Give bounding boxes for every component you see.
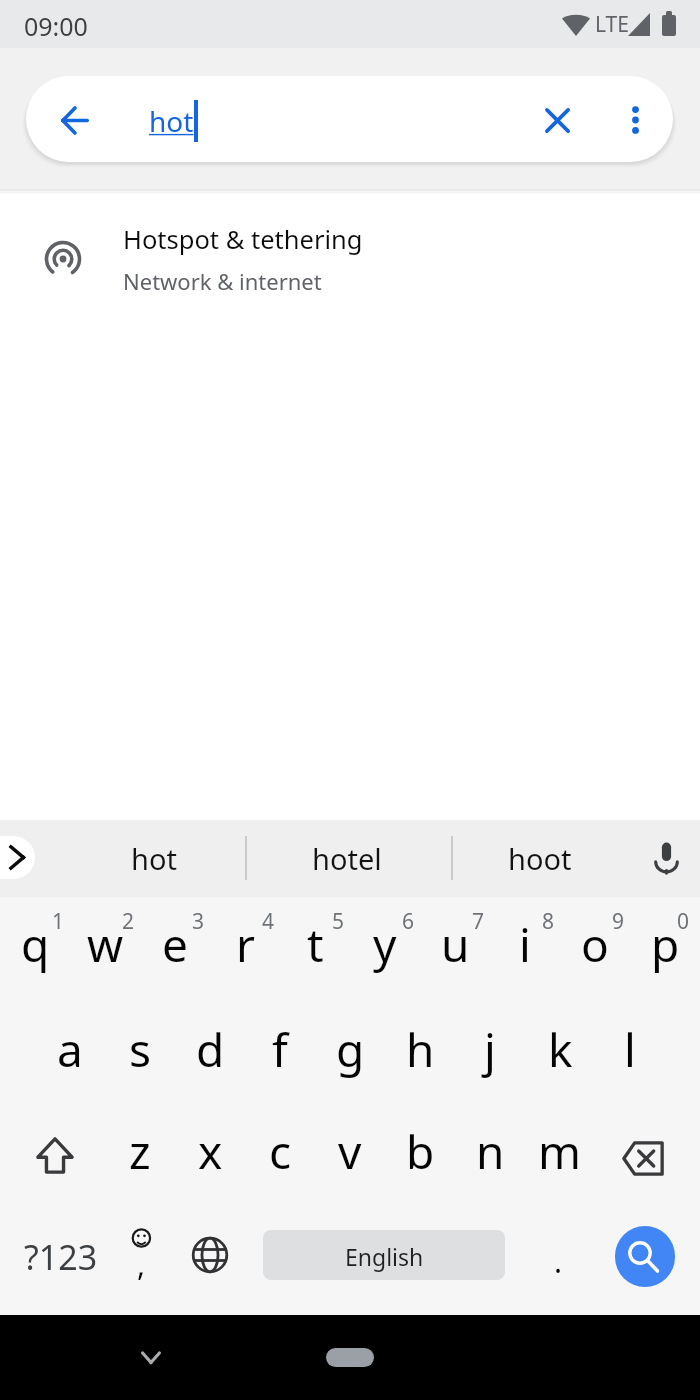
- button[interactable]: n: [455, 1106, 525, 1211]
- staticText: hotel: [312, 839, 382, 878]
- button[interactable]: Change keyboard language: [175, 1202, 245, 1307]
- staticText: x: [198, 1120, 223, 1183]
- staticText: y: [373, 913, 397, 976]
- button[interactable]: s: [105, 1002, 175, 1107]
- staticText: 3: [192, 907, 205, 936]
- button[interactable]: Hotspot & tethering: [0, 211, 700, 307]
- staticText: i: [519, 913, 531, 976]
- button[interactable]: m: [525, 1106, 595, 1211]
- staticText: v: [338, 1120, 362, 1183]
- button[interactable]: h: [385, 1002, 455, 1107]
- button[interactable]: b: [385, 1106, 455, 1211]
- button[interactable]: 7: [420, 897, 490, 1002]
- staticText: .: [554, 1241, 563, 1282]
- staticText: hot: [131, 839, 177, 878]
- staticText: g: [336, 1018, 365, 1081]
- staticText: k: [548, 1018, 573, 1081]
- button[interactable]: hot: [64, 820, 244, 897]
- staticText: 1: [52, 907, 65, 936]
- staticText: c: [269, 1120, 292, 1183]
- staticText: p: [651, 913, 680, 976]
- staticText: q: [21, 913, 50, 976]
- button[interactable]: hotel: [257, 820, 437, 897]
- staticText: b: [406, 1120, 435, 1183]
- staticText: 4: [262, 907, 275, 936]
- button[interactable]: Shift: [20, 1103, 90, 1208]
- staticText: ,: [137, 1244, 146, 1285]
- button[interactable]: 1: [0, 897, 70, 1002]
- button[interactable]: v: [315, 1106, 385, 1211]
- staticText: l: [624, 1018, 636, 1081]
- button[interactable]: Home: [326, 1348, 374, 1367]
- staticText: 9: [612, 907, 625, 936]
- button[interactable]: Voice input: [636, 826, 697, 891]
- staticText: LTE: [595, 10, 629, 39]
- button[interactable]: x: [175, 1106, 245, 1211]
- staticText: ?123: [24, 1234, 98, 1280]
- button[interactable]: Show more suggestions: [0, 836, 35, 879]
- button[interactable]: More options: [602, 77, 668, 162]
- staticText: t: [307, 913, 324, 976]
- staticText: f: [272, 1018, 288, 1081]
- staticText: r: [236, 913, 255, 976]
- button[interactable]: Navigate up: [26, 76, 673, 162]
- button[interactable]: 6: [350, 897, 420, 1002]
- button[interactable]: z: [105, 1106, 175, 1211]
- staticText: hot: [149, 102, 194, 140]
- staticText: o: [581, 913, 609, 976]
- staticText: j: [484, 1018, 496, 1081]
- button[interactable]: .: [528, 1211, 588, 1316]
- staticText: 2: [122, 907, 135, 936]
- staticText: m: [538, 1120, 582, 1183]
- staticText: e: [162, 913, 188, 976]
- button[interactable]: hoot: [450, 820, 630, 897]
- staticText: 5: [332, 907, 345, 936]
- button[interactable]: ?123: [12, 1211, 96, 1316]
- staticText: d: [196, 1018, 225, 1081]
- staticText: 7: [472, 907, 485, 936]
- button[interactable]: 0: [630, 897, 700, 1002]
- staticText: 8: [542, 907, 555, 936]
- staticText: hoot: [508, 839, 572, 878]
- staticText: s: [129, 1018, 152, 1081]
- button[interactable]: Clear query: [524, 77, 590, 162]
- staticText: Hotspot & tethering: [123, 222, 363, 257]
- staticText: h: [406, 1018, 435, 1081]
- button[interactable]: 2: [70, 897, 140, 1002]
- staticText: w: [87, 913, 124, 976]
- button[interactable]: Hide keyboard: [121, 1328, 181, 1388]
- button[interactable]: English: [263, 1230, 505, 1280]
- staticText: 0: [677, 907, 690, 936]
- staticText: n: [476, 1120, 505, 1183]
- staticText: a: [57, 1018, 83, 1081]
- button[interactable]: 8: [490, 897, 560, 1002]
- staticText: English: [345, 1241, 424, 1272]
- button[interactable]: Backspace: [608, 1106, 678, 1211]
- button[interactable]: 3: [140, 897, 210, 1002]
- button[interactable]: a: [35, 1002, 105, 1107]
- button[interactable]: 5: [280, 897, 350, 1002]
- staticText: u: [441, 913, 470, 976]
- button[interactable]: c: [245, 1106, 315, 1211]
- button[interactable]: k: [525, 1002, 595, 1107]
- button[interactable]: 4: [210, 897, 280, 1002]
- staticText: z: [129, 1120, 151, 1183]
- button[interactable]: j: [455, 1002, 525, 1107]
- button[interactable]: d: [175, 1002, 245, 1107]
- button[interactable]: Emoji and comma: [106, 1211, 176, 1316]
- button[interactable]: Navigate up: [41, 77, 109, 162]
- button[interactable]: l: [595, 1002, 665, 1107]
- staticText: 6: [402, 907, 415, 936]
- button[interactable]: g: [315, 1002, 385, 1107]
- button[interactable]: 9: [560, 897, 630, 1002]
- button[interactable]: Search: [615, 1226, 675, 1287]
- staticText: 09:00: [24, 9, 88, 43]
- button[interactable]: f: [245, 1002, 315, 1107]
- staticText: Network & internet: [123, 266, 322, 296]
